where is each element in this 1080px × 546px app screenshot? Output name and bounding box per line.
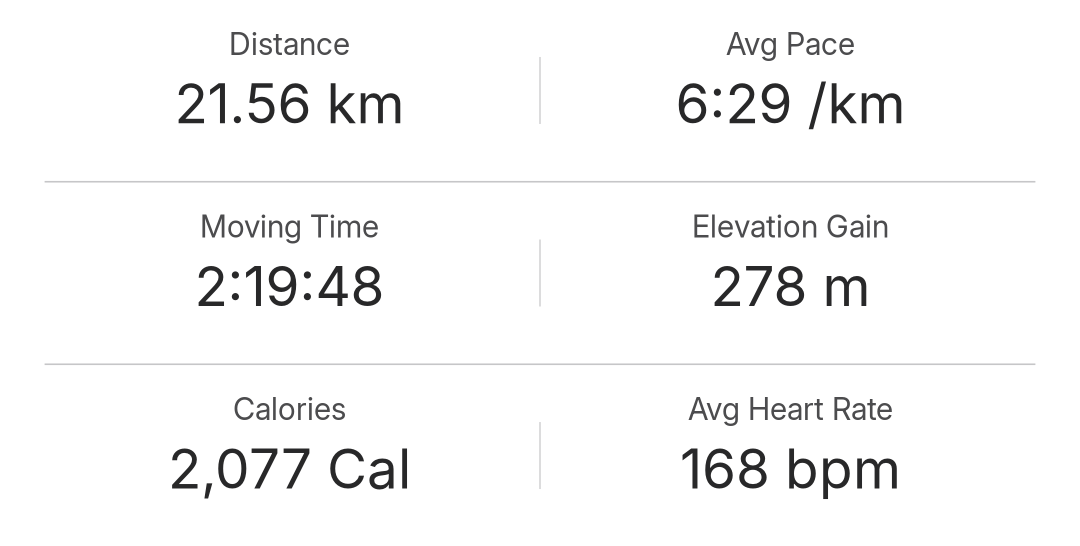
staticText: Calories <box>233 390 346 427</box>
staticText: 21.56 km <box>174 70 404 137</box>
staticText: Avg Heart Rate <box>688 390 893 427</box>
staticText: Elevation Gain <box>692 208 889 245</box>
staticText: Avg Pace <box>726 25 855 62</box>
staticText: 2,077 Cal <box>168 435 411 502</box>
staticText: 168 bpm <box>680 435 901 502</box>
staticText: 2:19:48 <box>194 253 384 319</box>
staticText: 6:29 /km <box>675 70 905 137</box>
staticText: Moving Time <box>200 208 379 245</box>
staticText: Distance <box>229 25 350 62</box>
staticText: 278 m <box>710 253 870 319</box>
